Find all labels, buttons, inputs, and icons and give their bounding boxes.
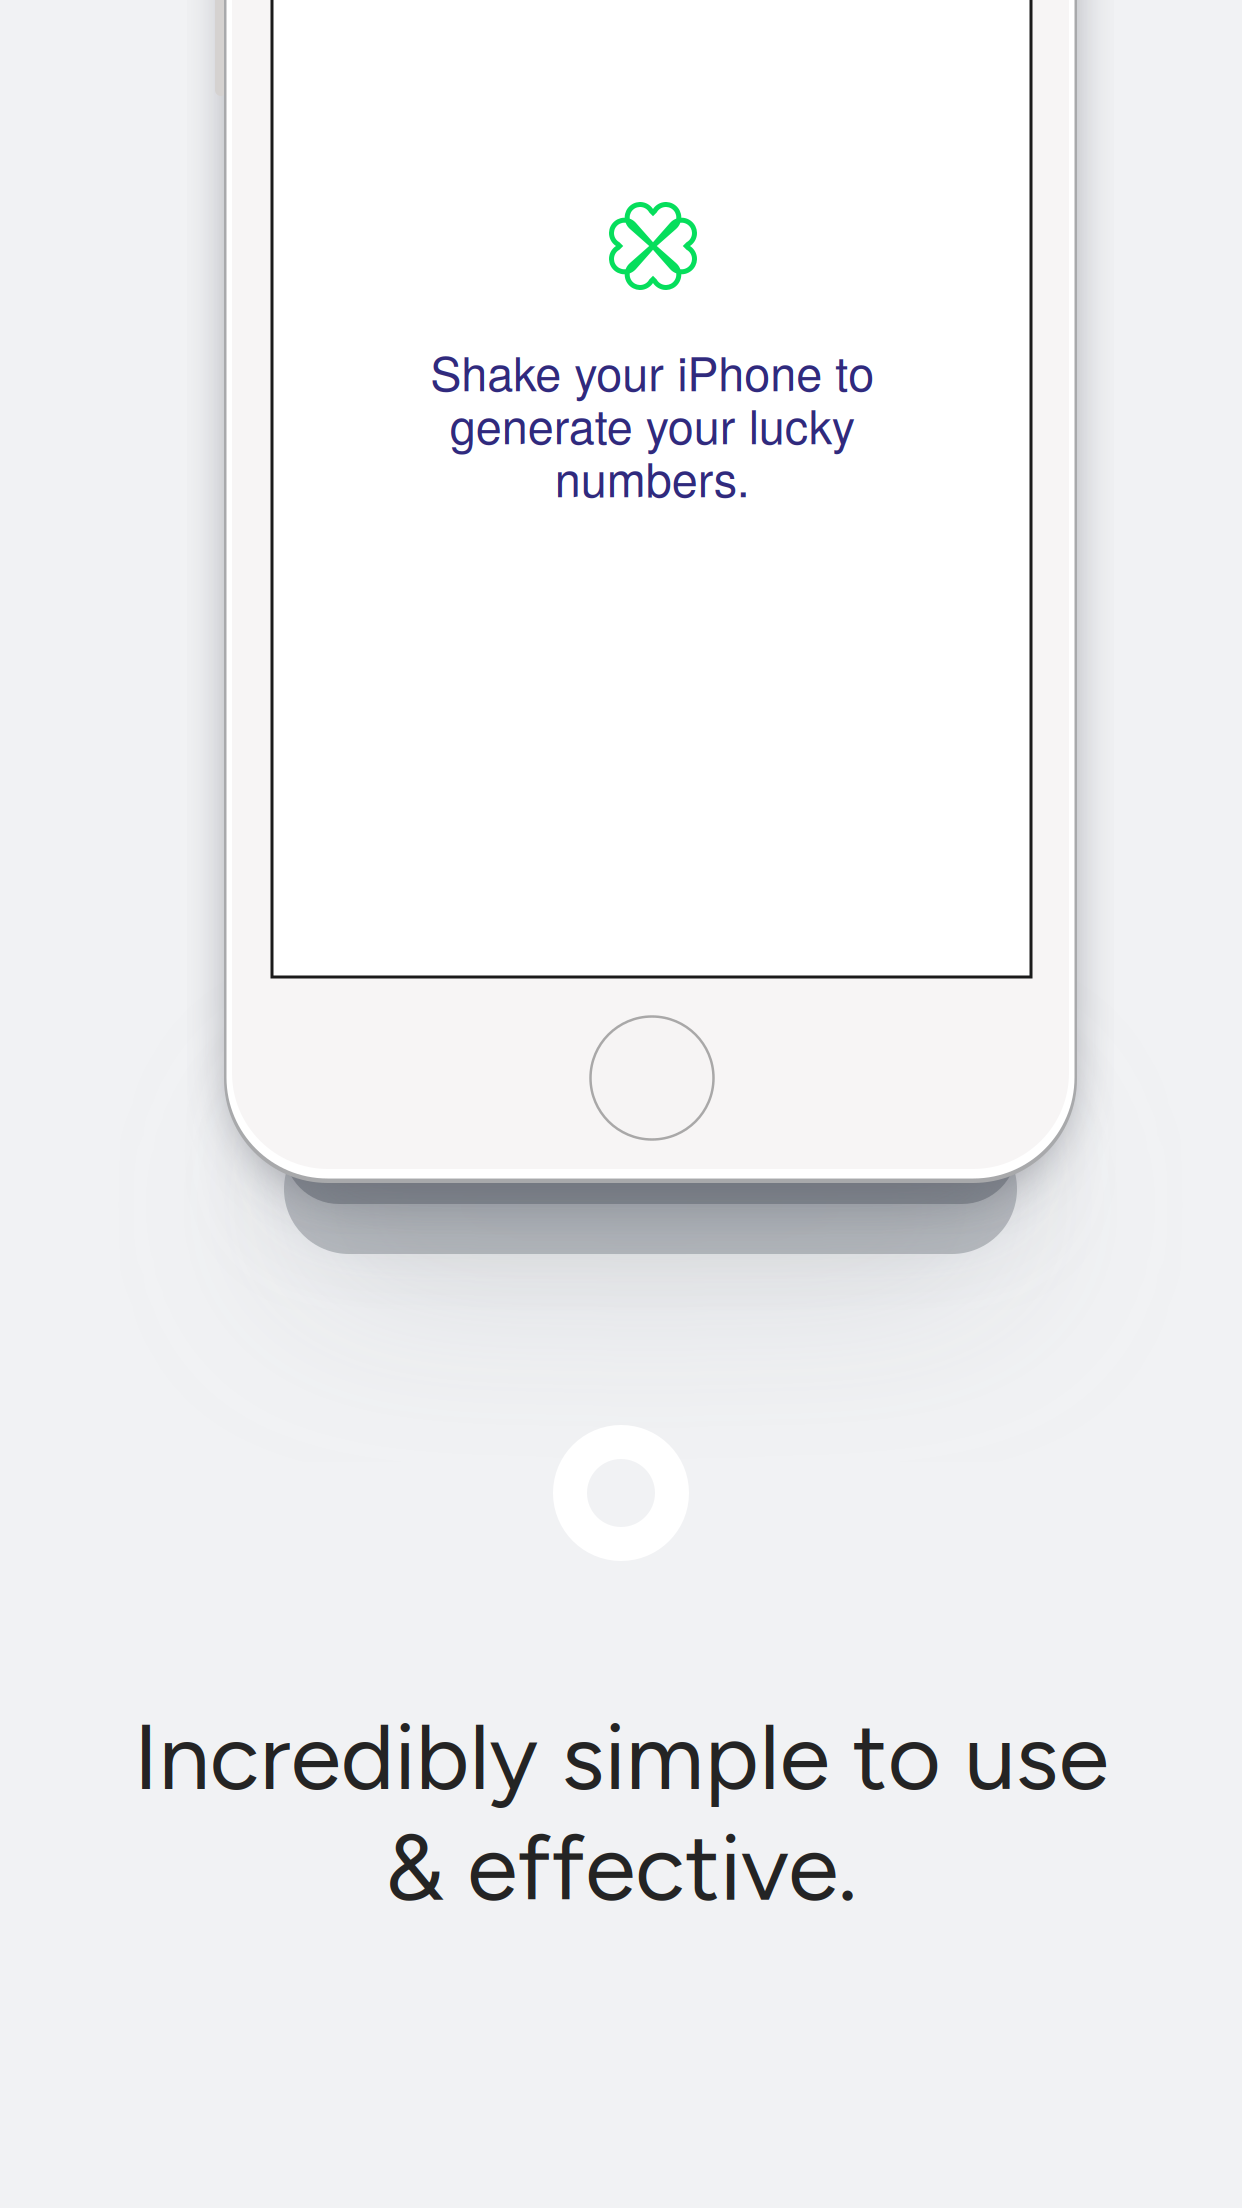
staticText: Shake your iPhone to generate your lucky… <box>430 337 874 511</box>
button[interactable]: Home <box>577 1003 727 1153</box>
button[interactable]: Page 1 of 3 <box>551 1423 691 1563</box>
staticText: Incredibly simple to use <box>133 1701 1108 1812</box>
staticText: & effective. <box>385 1812 857 1923</box>
